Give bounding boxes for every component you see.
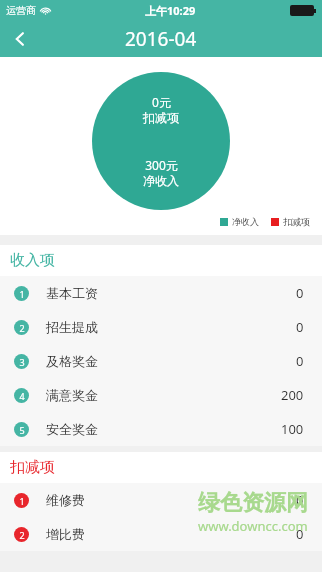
staticText: 1 [19, 288, 25, 300]
staticText: 增比费 [46, 526, 85, 542]
staticText: 上午10:29 [145, 3, 196, 18]
staticText: 200 [281, 386, 304, 404]
staticText: 安全奖金 [46, 421, 98, 437]
staticText: 0 [296, 491, 304, 509]
staticText: 运营商 [6, 4, 36, 17]
staticText: 2 [19, 322, 25, 334]
button[interactable]: 1 [0, 276, 322, 310]
staticText: 5 [19, 424, 25, 436]
staticText: 及格奖金 [46, 353, 98, 369]
button[interactable]: 扣减项 [0, 452, 322, 483]
staticText: 基本工资 [46, 285, 98, 301]
staticText: 2 [19, 529, 25, 541]
button[interactable]: 3 [0, 344, 322, 378]
button[interactable]: 4 [0, 378, 322, 412]
staticText: 100 [281, 420, 304, 438]
staticText: 4 [19, 390, 25, 402]
staticText: 净收入 [232, 216, 259, 227]
staticText: 招生提成 [46, 319, 98, 335]
button[interactable]: 2 [0, 517, 322, 551]
staticText: 0元 [152, 94, 171, 110]
staticText: 1 [19, 495, 25, 507]
staticText: 0 [296, 352, 304, 370]
staticText: 0 [296, 318, 304, 336]
button[interactable]: 收入项 [0, 245, 322, 276]
staticText: 维修费 [46, 492, 85, 508]
staticText: 扣减项 [143, 110, 179, 125]
staticText: 收入项 [10, 251, 55, 270]
staticText: 0 [296, 525, 304, 543]
staticText: 扣减项 [10, 458, 55, 477]
staticText: 0 [296, 284, 304, 302]
button[interactable]: Back [0, 20, 40, 57]
staticText: 扣减项 [283, 216, 310, 227]
staticText: 满意奖金 [46, 387, 98, 403]
staticText: 绿色资源网 [198, 489, 308, 517]
staticText: 3 [19, 356, 25, 368]
button[interactable]: 2 [0, 310, 322, 344]
staticText: www.downcc.com [198, 517, 308, 535]
staticText: 300元 [145, 157, 178, 173]
staticText: 2016-04 [125, 26, 197, 52]
button[interactable]: 5 [0, 412, 322, 446]
staticText: 净收入 [143, 173, 179, 188]
button[interactable]: 1 [0, 483, 322, 517]
